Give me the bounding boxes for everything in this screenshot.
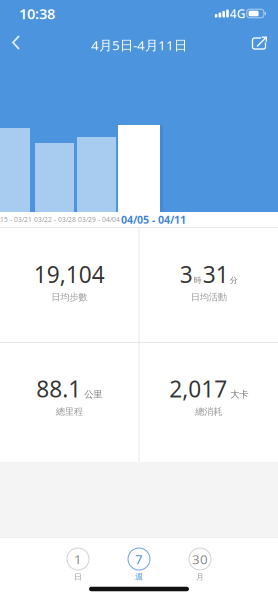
staticText: 3	[180, 259, 193, 289]
staticText: 日	[74, 572, 82, 582]
staticText: 時	[194, 275, 202, 285]
staticText: 31	[203, 259, 229, 289]
staticText: 4G	[230, 5, 246, 21]
staticText: 4月5日-4月11日	[91, 36, 187, 54]
staticText: 日均活動	[191, 291, 227, 303]
staticText: 總消耗	[195, 406, 222, 417]
staticText: 日均步數	[51, 291, 87, 303]
staticText: 總里程	[56, 406, 83, 417]
staticText: 2,017	[169, 374, 227, 404]
staticText: 15 - 03/21 03/22 - 03/28 03/29 - 04/04	[0, 215, 120, 224]
button[interactable]: 日	[56, 548, 100, 582]
staticText: 30	[192, 550, 208, 568]
staticText: 公里	[84, 389, 102, 400]
staticText: 大卡	[230, 389, 248, 400]
button[interactable]: 月	[178, 548, 222, 582]
button[interactable]: 週	[117, 548, 161, 582]
staticText: 分	[230, 275, 238, 285]
staticText: 1	[74, 550, 82, 568]
staticText: 週	[135, 572, 143, 582]
button[interactable]: Share	[244, 26, 278, 59]
staticText: 10:38	[19, 4, 55, 23]
staticText: 19,104	[34, 259, 105, 289]
staticText: 7	[135, 550, 143, 568]
staticText: 04/05 - 04/11	[121, 212, 186, 227]
staticText: 月	[196, 572, 204, 582]
button[interactable]: Back	[0, 26, 30, 59]
staticText: 88.1	[36, 374, 81, 404]
